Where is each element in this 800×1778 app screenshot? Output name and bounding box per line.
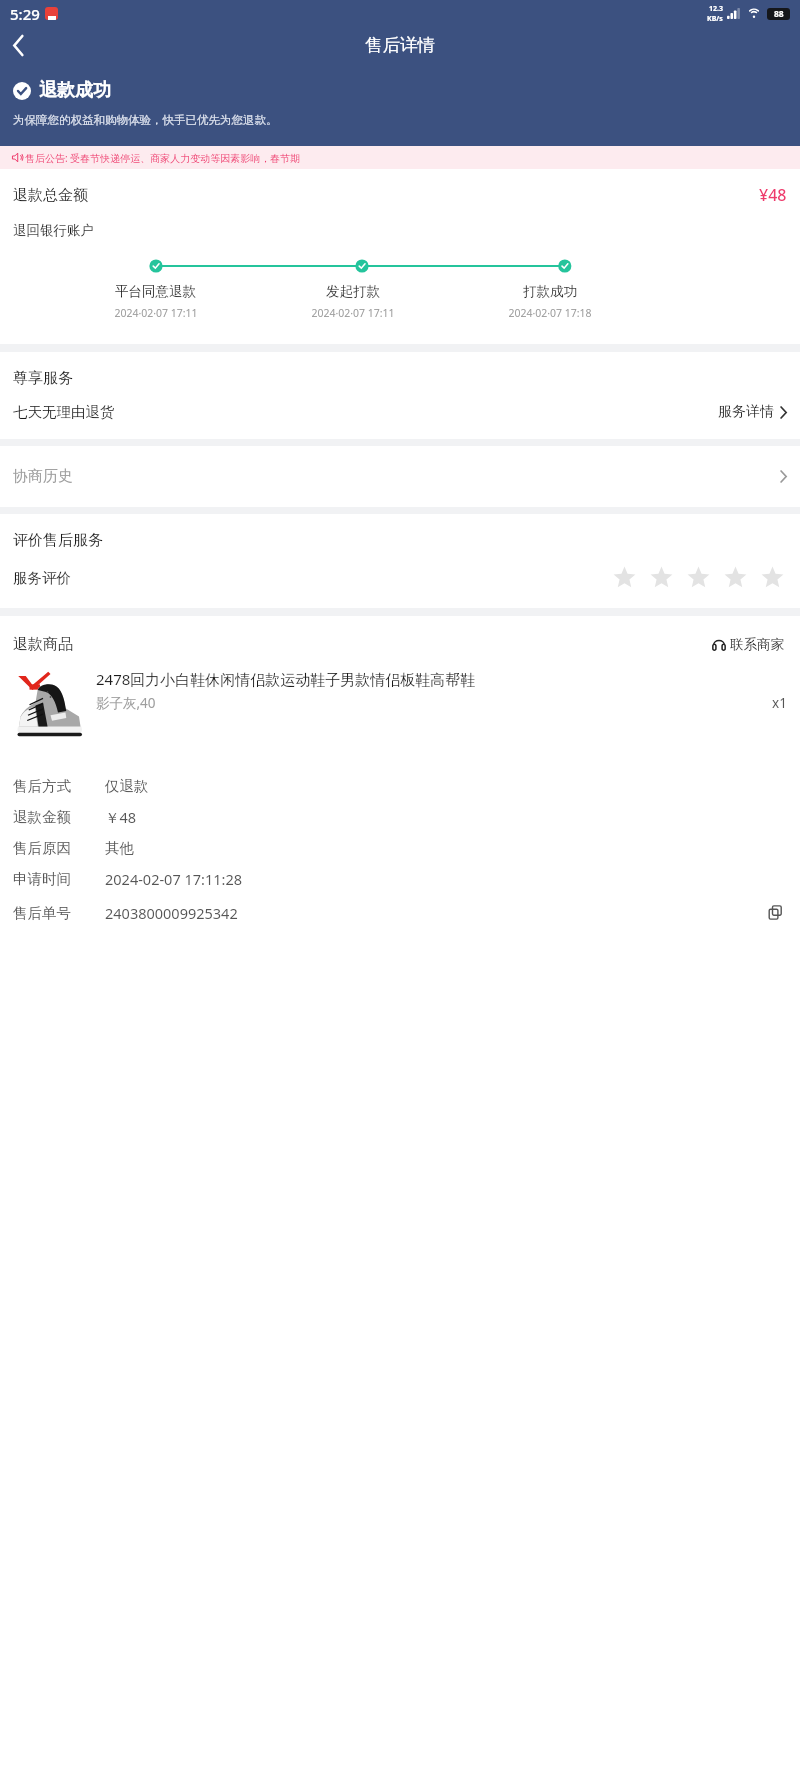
button[interactable]: 协商历史	[0, 446, 800, 507]
staticText: 2024·02·07 17:18	[508, 306, 592, 320]
staticText: 退款商品	[13, 635, 73, 654]
staticText: 售后方式	[13, 777, 105, 795]
staticText: 其他	[105, 839, 134, 857]
staticText: 七天无理由退货	[13, 403, 115, 421]
button[interactable]: Rate 5 stars	[754, 563, 791, 592]
staticText: 评价售后服务	[13, 531, 103, 550]
staticText: 为保障您的权益和购物体验，快手已优先为您退款。	[13, 113, 278, 127]
button[interactable]: Rate 4 stars	[717, 563, 754, 592]
staticText: 服务详情	[718, 403, 774, 421]
staticText: 2024-02-07 17:11:28	[105, 869, 242, 889]
staticText: 联系商家	[730, 636, 784, 653]
staticText: 发起打款	[326, 283, 380, 300]
staticText: 服务评价	[13, 569, 71, 587]
staticText: 协商历史	[13, 467, 73, 486]
staticText: 打款成功	[523, 283, 577, 300]
staticText: 退款金额	[13, 808, 105, 826]
button[interactable]: Rate 3 stars	[680, 563, 717, 592]
button[interactable]: 售后公告: 受春节快递停运、商家人力变动等因素影响，春节期	[0, 146, 800, 169]
staticText: 平台同意退款	[115, 283, 196, 300]
staticText: 退款成功	[39, 79, 111, 102]
staticText: 申请时间	[13, 870, 105, 888]
button[interactable]: 联系商家	[709, 633, 787, 656]
staticText: 2478回力小白鞋休闲情侣款运动鞋子男款情侣板鞋高帮鞋	[96, 669, 476, 689]
staticText: 仅退款	[105, 777, 149, 795]
staticText: x1	[772, 694, 787, 712]
staticText: 售后原因	[13, 839, 105, 857]
staticText: 退回银行账户	[13, 222, 94, 239]
staticText: ¥48	[759, 184, 787, 206]
button[interactable]: Back	[0, 27, 36, 63]
staticText: 2024·02·07 17:11	[311, 306, 395, 320]
staticText: 5:29	[10, 4, 40, 24]
button[interactable]: Rate 1 stars	[606, 563, 643, 592]
button[interactable]: 2478回力小白鞋休闲情侣款运动鞋子男款情侣板鞋高帮鞋	[0, 669, 800, 739]
staticText: ￥48	[105, 807, 137, 827]
button[interactable]: Copy order number	[764, 901, 787, 924]
staticText: 2403800009925342	[105, 903, 238, 923]
button[interactable]: 七天无理由退货	[0, 388, 800, 436]
staticText: 退款总金额	[13, 186, 88, 205]
staticText: 售后公告: 受春节快递停运、商家人力变动等因素影响，春节期	[25, 151, 301, 165]
staticText: 影子灰,40	[96, 694, 156, 712]
staticText: 售后单号	[13, 904, 105, 922]
staticText: KB/s	[707, 14, 723, 24]
staticText: 12.3	[709, 4, 723, 14]
button[interactable]: Rate 2 stars	[643, 563, 680, 592]
staticText: 88	[774, 8, 784, 20]
staticText: 尊享服务	[13, 369, 73, 388]
staticText: 售后详情	[365, 34, 435, 56]
staticText: 2024·02·07 17:11	[114, 306, 198, 320]
